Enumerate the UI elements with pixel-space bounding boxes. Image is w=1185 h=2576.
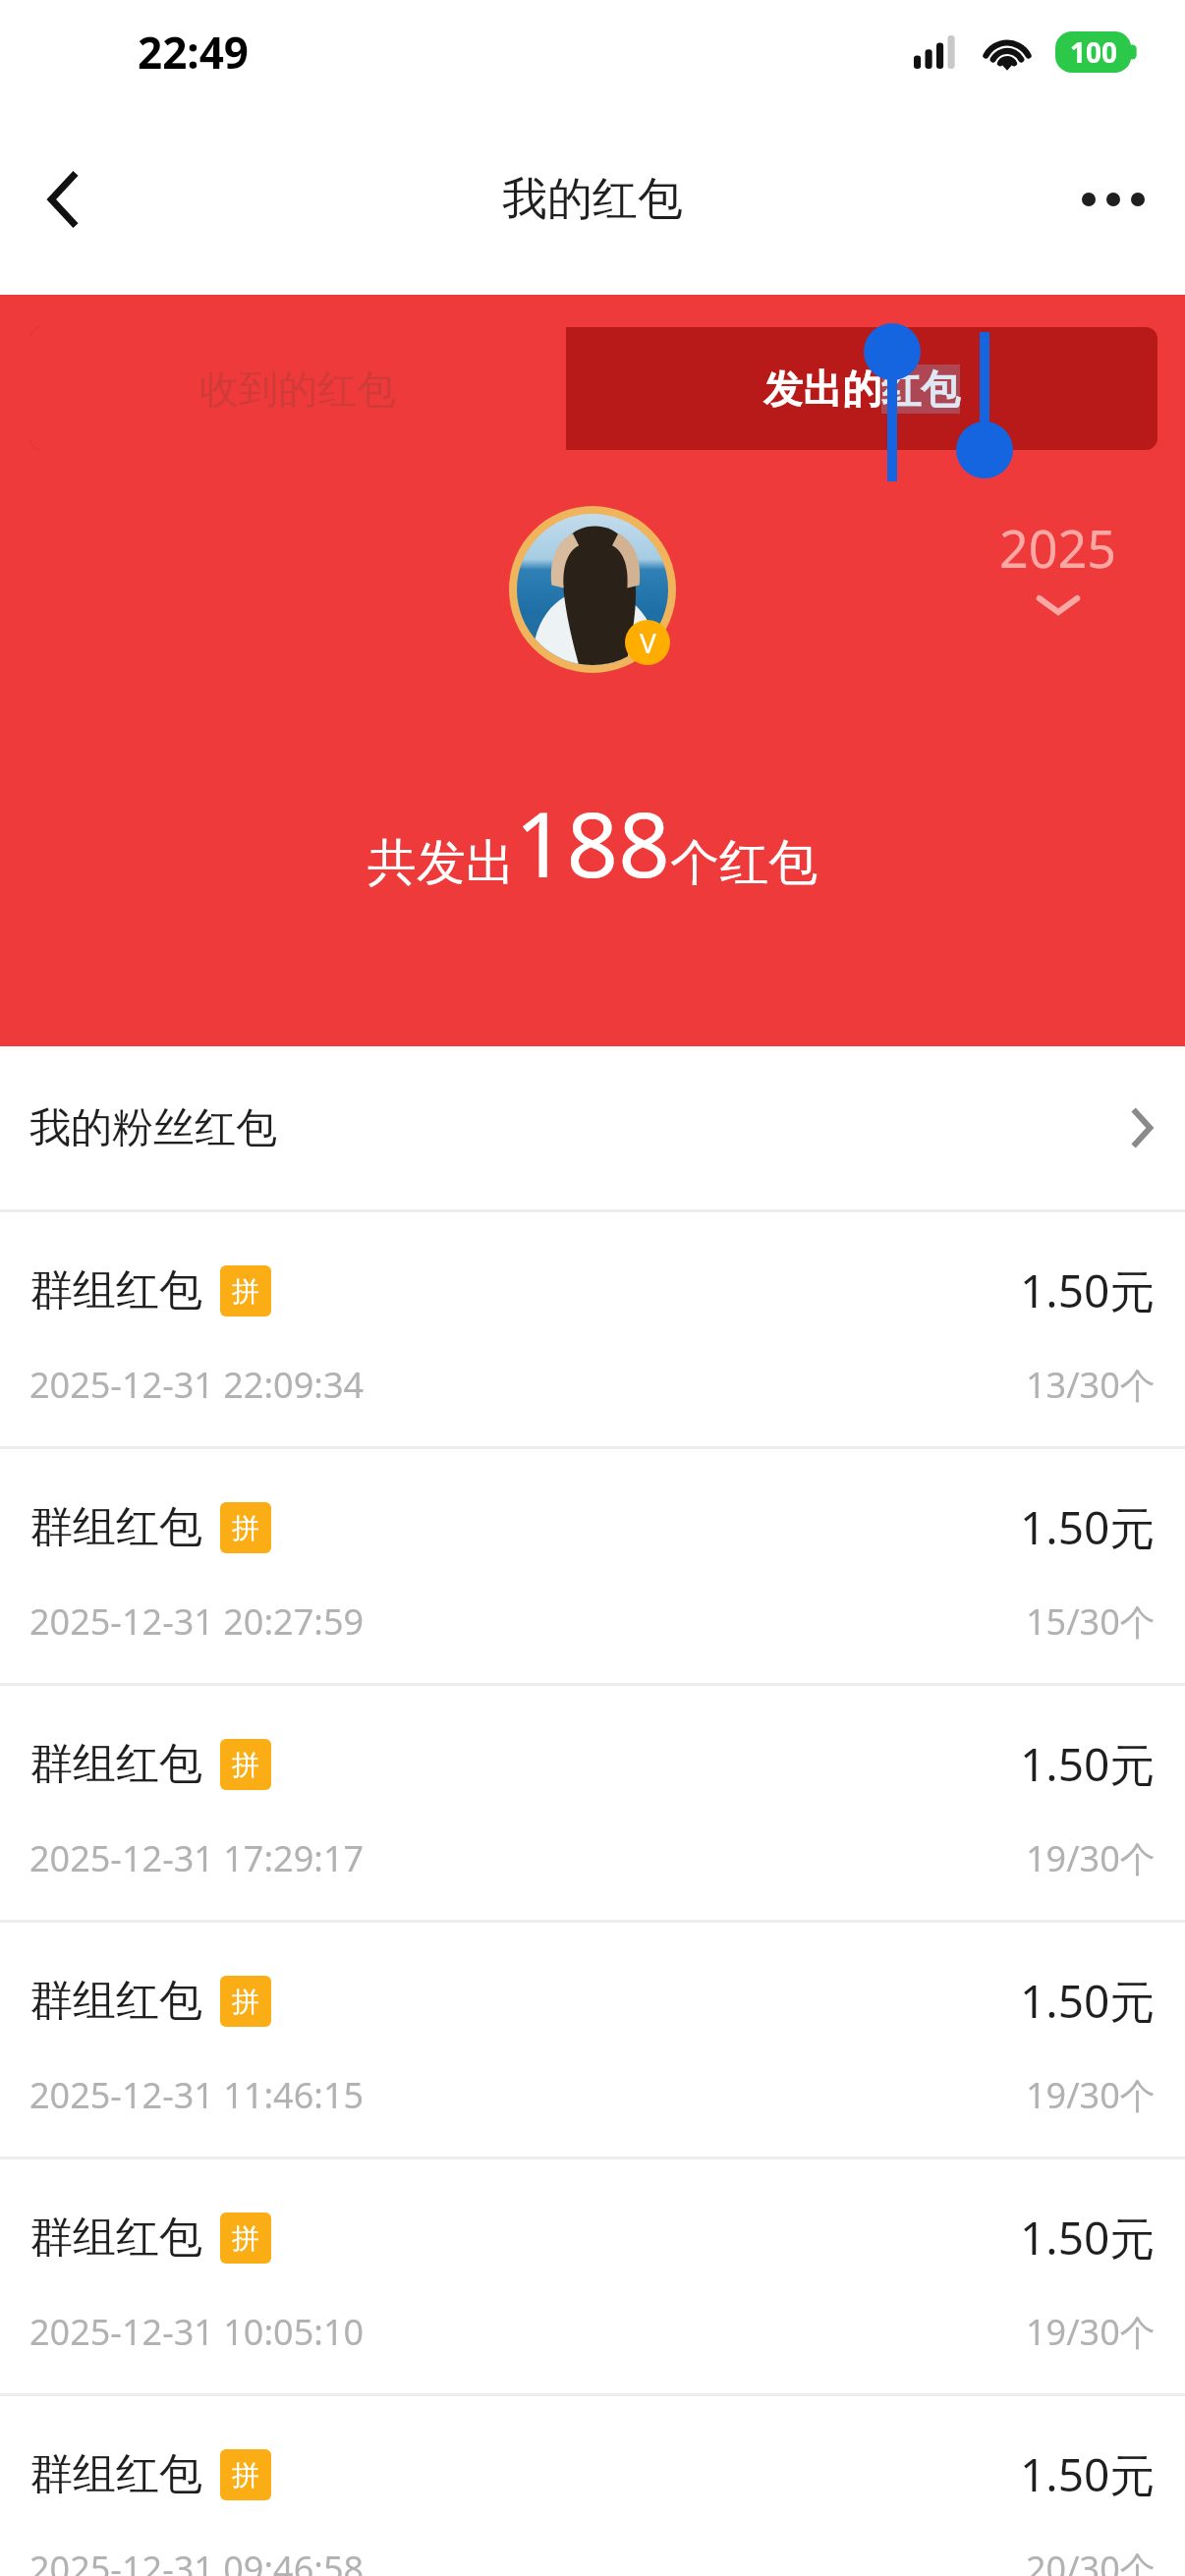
staticText: 19/30个 (1026, 2071, 1156, 2119)
staticText: 群组红包 (29, 2447, 202, 2501)
staticText: 收到的红包 (199, 364, 396, 414)
staticText: 1.50元 (1020, 1496, 1156, 1558)
staticText: 19/30个 (1026, 2308, 1156, 2356)
staticText: 群组红包 (29, 1737, 202, 1791)
staticText: 群组红包 (29, 1974, 202, 2028)
button[interactable]: 群组红包 (0, 1209, 1185, 1446)
staticText: 拼 (232, 2221, 259, 2256)
staticText: 发出的 (763, 364, 881, 414)
button[interactable]: 群组红包 (0, 2393, 1185, 2576)
staticText: 2025-12-31 10:05:10 (29, 2308, 365, 2356)
button[interactable]: 2025 (999, 513, 1116, 616)
staticText: 共发出 (367, 832, 515, 894)
staticText: 2025-12-31 22:09:34 (29, 1361, 365, 1409)
button[interactable]: 群组红包 (0, 1920, 1185, 2156)
button[interactable]: 群组红包 (0, 1446, 1185, 1683)
staticText: 15/30个 (1026, 1597, 1156, 1646)
staticText: 100 (1070, 33, 1118, 71)
button[interactable]: 收到的红包 (29, 327, 566, 450)
staticText: 1.50元 (1020, 2443, 1156, 2505)
button[interactable]: 我的粉丝红包 (0, 1046, 1185, 1209)
staticText: 群组红包 (29, 2211, 202, 2265)
staticText: 拼 (232, 1511, 259, 1545)
staticText: 群组红包 (29, 1263, 202, 1317)
staticText: 20/30个 (1026, 2545, 1156, 2576)
staticText: 1.50元 (1020, 1260, 1156, 1321)
button[interactable]: 群组红包 (0, 1683, 1185, 1920)
staticText: 22:49 (138, 23, 250, 82)
staticText: 拼 (232, 2458, 259, 2492)
staticText: 群组红包 (29, 1500, 202, 1554)
staticText: 2025-12-31 20:27:59 (29, 1597, 365, 1646)
staticText: 2025-12-31 17:29:17 (29, 1834, 365, 1882)
staticText: 拼 (232, 1748, 259, 1782)
staticText: 1.50元 (1020, 1733, 1156, 1795)
staticText: 1.50元 (1020, 1970, 1156, 2032)
staticText: 2025 (999, 513, 1116, 583)
staticText: 拼 (232, 1985, 259, 2019)
staticText: 188 (515, 781, 670, 904)
staticText: 我的红包 (502, 171, 683, 228)
button[interactable]: 群组红包 (0, 2156, 1185, 2393)
staticText: 1.50元 (1020, 2207, 1156, 2268)
staticText: V (640, 624, 656, 661)
button[interactable]: Back (10, 145, 118, 253)
staticText: 我的粉丝红包 (29, 1102, 277, 1154)
staticText: 红包 (881, 364, 960, 414)
button[interactable]: 发出的 (566, 327, 1157, 450)
staticText: 2025-12-31 11:46:15 (29, 2071, 365, 2119)
staticText: 19/30个 (1026, 1834, 1156, 1882)
staticText: 拼 (232, 1274, 259, 1309)
staticText: 13/30个 (1026, 1361, 1156, 1409)
staticText: 2025-12-31 09:46:58 (29, 2545, 365, 2576)
staticText: 个红包 (670, 832, 818, 894)
button[interactable]: More options (1059, 145, 1167, 253)
